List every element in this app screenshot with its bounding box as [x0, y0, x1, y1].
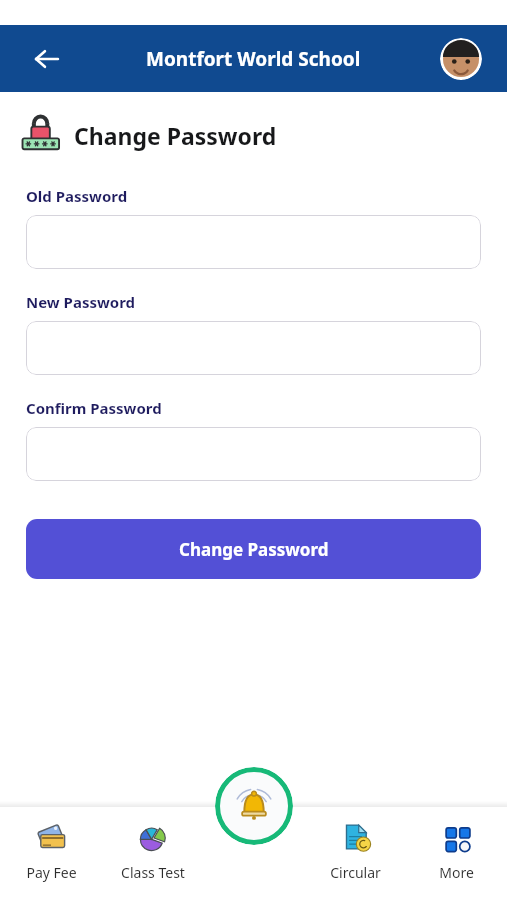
staticText: More — [439, 863, 474, 882]
staticText: Confirm Password — [26, 398, 162, 418]
button[interactable]: Pay Fee — [0, 807, 102, 900]
button[interactable]: Notifications — [215, 767, 293, 845]
button[interactable]: Circular — [305, 807, 406, 900]
button[interactable]: Profile — [440, 38, 482, 80]
staticText: Circular — [330, 863, 381, 882]
staticText: Montfort World School — [146, 46, 361, 72]
staticText: Change Password — [179, 538, 329, 561]
button[interactable]: Change Password — [26, 519, 481, 579]
button[interactable]: Class Test — [102, 807, 204, 900]
staticText: Old Password — [26, 186, 128, 206]
button[interactable] — [26, 427, 481, 481]
button[interactable]: Back — [24, 36, 70, 82]
staticText: New Password — [26, 292, 136, 312]
button[interactable] — [26, 321, 481, 375]
button[interactable] — [26, 215, 481, 269]
staticText: Pay Fee — [26, 863, 77, 882]
button[interactable]: More — [406, 807, 507, 900]
staticText: Class Test — [121, 863, 185, 882]
staticText: Change Password — [74, 120, 277, 151]
